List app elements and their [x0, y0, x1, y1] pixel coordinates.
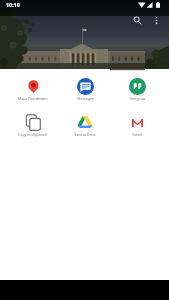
button[interactable]: Gmail: [111, 105, 163, 141]
staticText: Save to Drive: [74, 132, 96, 137]
button[interactable]: Maps Coordinates: [6, 69, 59, 105]
button[interactable]: Messages: [59, 69, 111, 105]
button[interactable]: Save to Drive: [59, 105, 111, 141]
button[interactable]: Search: [128, 13, 147, 28]
staticText: 10:10: [6, 1, 20, 8]
staticText: Copy to clipboard: [18, 132, 47, 137]
staticText: Hangouts: [129, 96, 146, 101]
button[interactable]: Copy to clipboard: [6, 105, 59, 141]
staticText: Gmail: [132, 132, 142, 137]
button[interactable]: Hangouts: [111, 69, 163, 105]
staticText: Messages: [77, 96, 94, 101]
staticText: Maps Coordinates: [18, 96, 48, 101]
button[interactable]: More options: [147, 13, 166, 28]
